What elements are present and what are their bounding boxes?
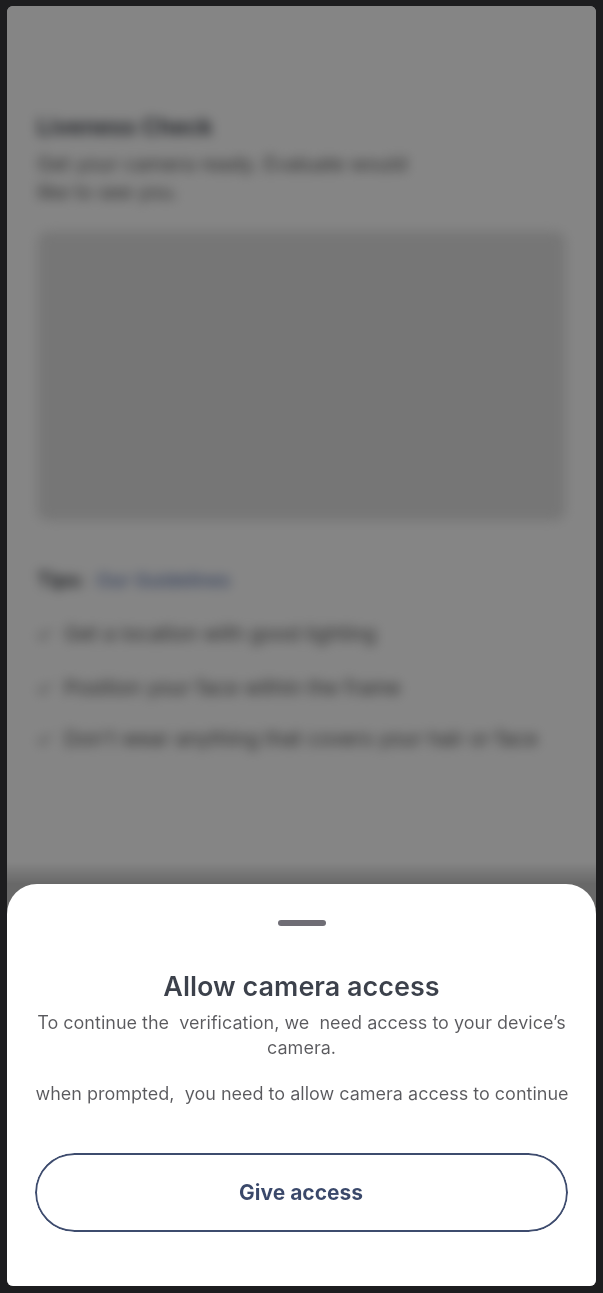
staticText: Don't wear anything that covers your hai… — [64, 726, 538, 751]
staticText: Give access — [239, 1180, 364, 1205]
staticText: Tips: — [37, 568, 86, 592]
staticText: Get a location with good lighting — [64, 621, 377, 646]
staticText: when prompted, you need to allow camera … — [35, 1083, 569, 1105]
staticText: Position your face within the frame — [64, 675, 401, 700]
staticText: Liveness Check — [37, 113, 213, 141]
button[interactable]: Give access — [35, 1153, 568, 1232]
button[interactable]: Our Guidelines — [96, 569, 231, 592]
staticText: To continue the verification, we need ac… — [37, 1012, 566, 1058]
staticText: Allow camera access — [163, 970, 440, 1003]
staticText: Get your camera ready. Evaluate would li… — [37, 152, 408, 204]
